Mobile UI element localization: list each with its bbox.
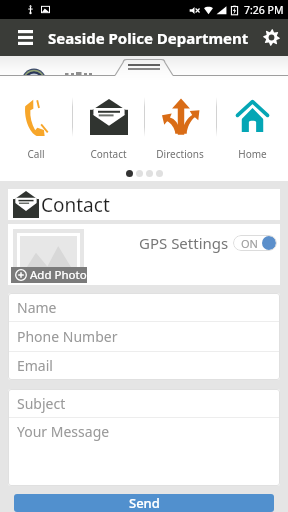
button[interactable]: Call [0, 97, 72, 137]
staticText: Directions [156, 147, 204, 159]
staticText: Contact [90, 147, 127, 159]
button[interactable]: Contact [73, 97, 144, 137]
staticText: Call [27, 147, 45, 159]
button[interactable]: Settings [255, 19, 288, 56]
button[interactable] [146, 170, 153, 177]
button[interactable] [156, 170, 163, 177]
staticText: GPS Settings [139, 233, 229, 253]
staticText: Send [129, 494, 160, 512]
button[interactable]: Phone Number [8, 321, 280, 351]
staticText: 7:26 PM [244, 3, 284, 17]
button[interactable]: GPS Settings toggle [233, 235, 277, 251]
staticText: Home [238, 147, 267, 159]
button[interactable]: Add Photo [13, 229, 84, 283]
staticText: ON [241, 236, 258, 251]
button[interactable]: Menu [7, 19, 44, 56]
staticText: Email [17, 356, 53, 375]
staticText: Seaside Police Department [48, 28, 249, 48]
staticText: Subject [17, 394, 66, 413]
button[interactable]: Your Message [8, 417, 280, 486]
button[interactable] [136, 170, 143, 177]
button[interactable]: Send [14, 494, 274, 512]
button[interactable]: Directions [145, 97, 216, 137]
button[interactable]: Contact [8, 189, 280, 220]
button[interactable]: Name [8, 293, 280, 321]
button[interactable]: Email [8, 351, 280, 380]
staticText: Name [17, 298, 57, 317]
button[interactable]: Add Photo [11, 267, 87, 283]
button[interactable] [126, 170, 133, 177]
button[interactable]: Subject [8, 389, 280, 417]
staticText: Your Message [17, 422, 110, 441]
staticText: Add Photo [30, 267, 87, 283]
staticText: Contact [41, 192, 110, 218]
button[interactable]: Home [217, 97, 288, 137]
staticText: Phone Number [17, 327, 118, 346]
